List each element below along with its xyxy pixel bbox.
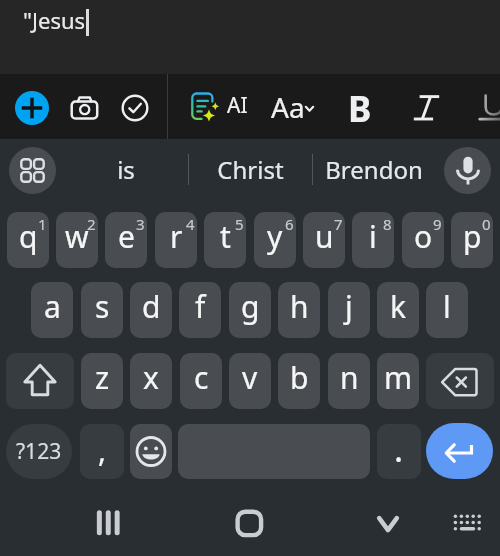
staticText: s (95, 286, 110, 327)
staticText: AI (227, 91, 248, 120)
button[interactable]: Add attachment (15, 91, 49, 125)
button[interactable]: is (64, 139, 188, 200)
staticText: k (390, 286, 407, 327)
staticText: . (394, 426, 404, 472)
button[interactable]: Enter (426, 423, 493, 479)
staticText: w (65, 216, 89, 257)
button[interactable]: p (451, 212, 493, 268)
staticText: a (44, 286, 61, 327)
button[interactable]: q (7, 212, 49, 268)
staticText: z (95, 357, 110, 398)
staticText: 7 (334, 214, 343, 234)
button[interactable]: a (31, 282, 73, 338)
staticText: r (170, 216, 183, 257)
button[interactable]: t (204, 212, 246, 268)
staticText: m (384, 357, 413, 398)
staticText: is (117, 153, 135, 186)
button[interactable]: w (56, 212, 98, 268)
staticText: B (348, 85, 372, 125)
staticText: p (463, 216, 482, 257)
button[interactable]: e (105, 212, 147, 268)
staticText: i (369, 216, 377, 257)
staticText: 0 (482, 214, 491, 234)
button[interactable]: m (377, 353, 419, 409)
staticText: 5 (235, 214, 244, 234)
staticText: d (142, 286, 161, 327)
button[interactable]: Camera (69, 94, 101, 122)
button[interactable]: l (426, 282, 468, 338)
staticText: Brendon (325, 153, 423, 186)
button[interactable]: . (377, 424, 421, 479)
button[interactable]: x (130, 353, 172, 409)
staticText: n (340, 357, 359, 398)
button[interactable]: Shift (6, 353, 74, 409)
button[interactable]: c (180, 353, 222, 409)
button[interactable]: Change keyboard (450, 498, 486, 534)
staticText: e (118, 216, 135, 257)
button[interactable]: Backspace (426, 353, 494, 409)
button[interactable]: ?123 (6, 424, 72, 479)
staticText: , (98, 430, 107, 471)
button[interactable]: v (229, 353, 271, 409)
staticText: q (19, 216, 38, 257)
button[interactable]: b (278, 353, 320, 409)
staticText: 4 (186, 214, 195, 234)
staticText: Aa (271, 88, 305, 126)
staticText: 8 (383, 214, 392, 234)
staticText: 2 (87, 214, 96, 234)
staticText: y (267, 216, 283, 257)
staticText: g (241, 286, 260, 327)
staticText: ?123 (16, 437, 62, 466)
button[interactable]: o (402, 212, 444, 268)
staticText: u (315, 216, 334, 257)
staticText: f (195, 286, 206, 327)
staticText: "Jesus (23, 5, 86, 35)
button[interactable]: Done (121, 94, 149, 122)
button[interactable]: j (328, 282, 370, 338)
button[interactable]: B (344, 84, 376, 124)
button[interactable]: Home (228, 498, 268, 538)
button[interactable]: f (179, 282, 221, 338)
button[interactable]: u (303, 212, 345, 268)
button[interactable]: Aa (271, 86, 314, 126)
button[interactable]: z (81, 353, 123, 409)
staticText: o (414, 216, 433, 257)
staticText: h (290, 286, 309, 327)
staticText: 6 (285, 214, 294, 234)
staticText: v (242, 357, 258, 398)
button[interactable]: r (155, 212, 197, 268)
button[interactable]: y (254, 212, 296, 268)
button[interactable]: Christ (188, 139, 312, 200)
button[interactable]: Keyboard modes (9, 147, 56, 194)
button[interactable]: d (130, 282, 172, 338)
button[interactable]: Underline (478, 93, 500, 122)
button[interactable]: h (278, 282, 320, 338)
staticText: 3 (136, 214, 145, 234)
button[interactable]: s (81, 282, 123, 338)
button[interactable]: g (229, 282, 271, 338)
button[interactable]: Recent apps (88, 498, 128, 538)
staticText: t (220, 216, 231, 257)
button[interactable]: Voice input (444, 147, 491, 194)
button[interactable]: , (80, 424, 124, 479)
staticText: c (194, 357, 209, 398)
staticText: 9 (433, 214, 442, 234)
staticText: b (290, 357, 309, 398)
staticText: Christ (217, 153, 284, 186)
button[interactable]: Emoji (130, 424, 172, 479)
button[interactable]: i (352, 212, 394, 268)
button[interactable]: k (377, 282, 419, 338)
button[interactable]: Italic (412, 93, 440, 120)
staticText: l (443, 286, 451, 327)
button[interactable]: AI (190, 87, 241, 124)
button[interactable]: Hide keyboard (368, 498, 408, 538)
button[interactable]: n (328, 353, 370, 409)
button[interactable]: Brendon (312, 139, 436, 200)
staticText: x (143, 357, 159, 398)
staticText: j (345, 286, 353, 327)
staticText: 1 (38, 214, 47, 234)
